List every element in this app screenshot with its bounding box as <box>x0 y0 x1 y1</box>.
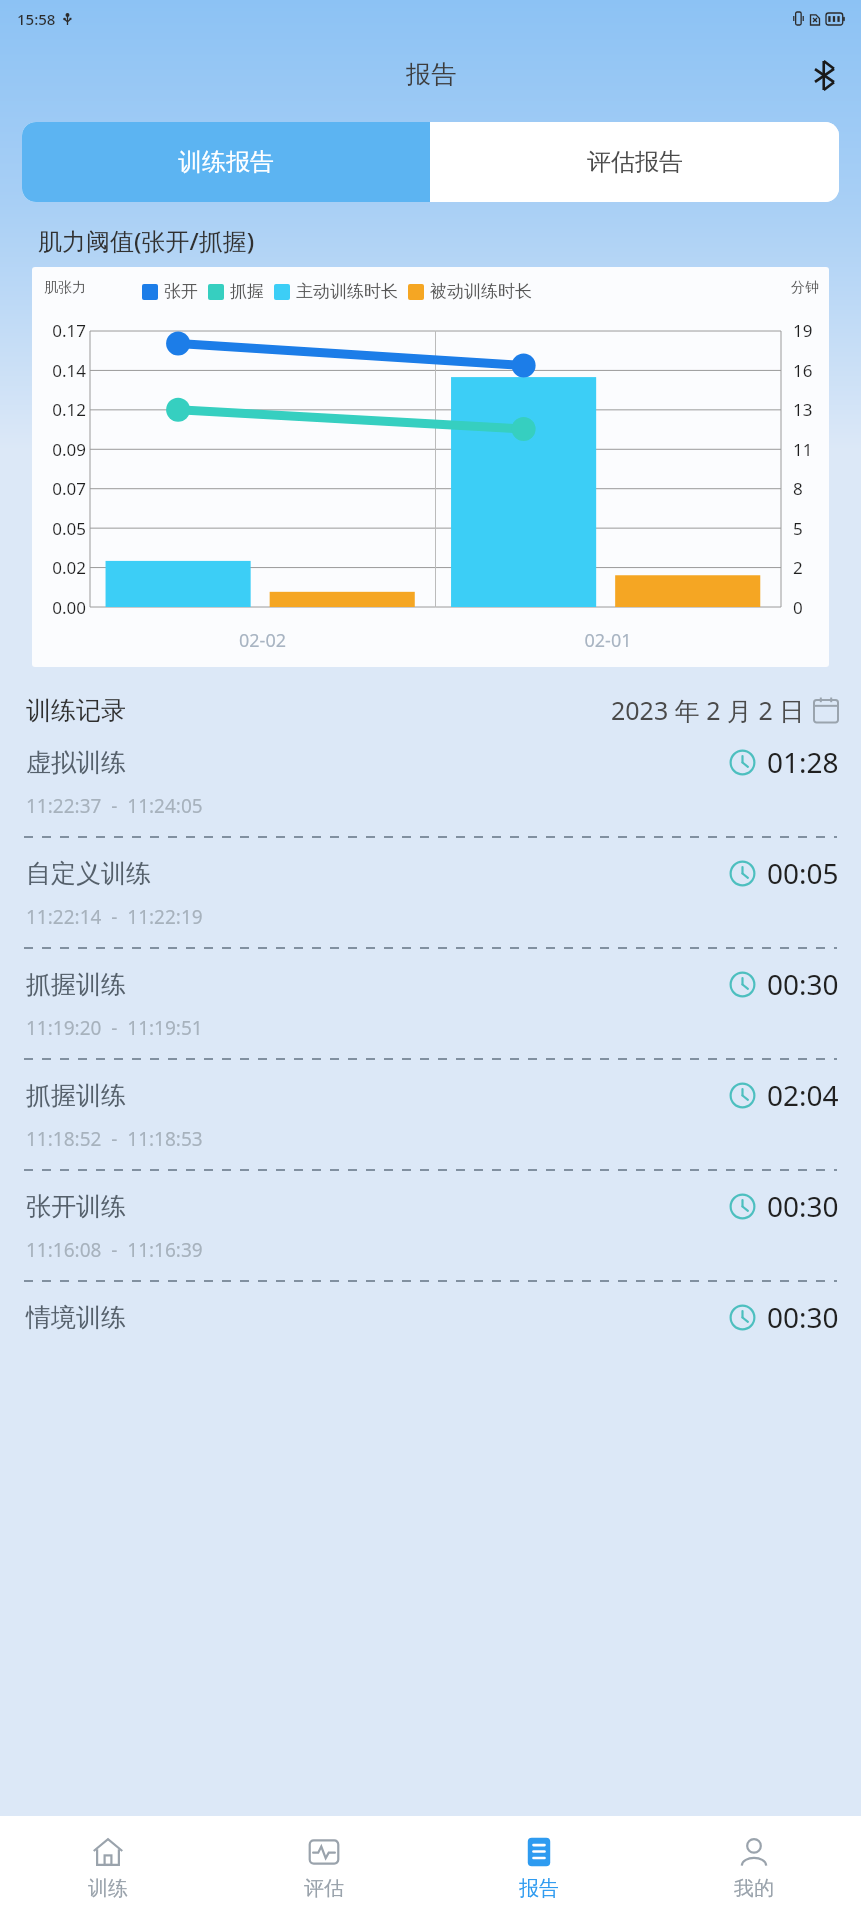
staticText: 0.07 <box>36 477 86 500</box>
staticText: 11:16:08 - 11:16:39 <box>26 1237 203 1263</box>
staticText: 训练报告 <box>178 147 274 177</box>
staticText: 11:22:14 - 11:22:19 <box>26 904 203 930</box>
staticText: 16 <box>793 359 821 382</box>
button[interactable]: 报告 <box>431 1816 646 1920</box>
button[interactable]: 评估报告 <box>430 122 839 202</box>
staticText: 虚拟训练 <box>26 747 126 778</box>
button[interactable]: 训练报告 <box>22 122 430 202</box>
staticText: 0.05 <box>36 517 86 540</box>
staticText: 2 <box>793 556 821 579</box>
staticText: 训练 <box>88 1876 128 1901</box>
button[interactable]: 情境训练 <box>0 1282 861 1356</box>
staticText: 2023 年 2 月 2 日 <box>611 693 805 727</box>
staticText: 0 <box>793 596 821 619</box>
button[interactable]: Bluetooth <box>801 52 847 98</box>
staticText: 0.09 <box>36 438 86 461</box>
staticText: 02:04 <box>767 1076 839 1114</box>
staticText: 15:58 <box>17 9 56 29</box>
staticText: 肌张力 <box>44 279 86 297</box>
staticText: 评估报告 <box>587 147 683 177</box>
staticText: 0.12 <box>36 398 86 421</box>
button[interactable]: 自定义训练 <box>0 838 861 949</box>
button[interactable]: 我的 <box>646 1816 861 1920</box>
staticText: 报告 <box>519 1876 559 1901</box>
staticText: 0.00 <box>36 596 86 619</box>
staticText: 01:28 <box>767 743 839 781</box>
staticText: 抓握 <box>230 281 264 302</box>
button[interactable]: 抓握训练 <box>0 949 861 1060</box>
staticText: 02-02 <box>90 628 435 653</box>
staticText: 11:18:52 - 11:18:53 <box>26 1126 203 1152</box>
staticText: 抓握训练 <box>26 1080 126 1111</box>
staticText: 00:30 <box>767 1298 839 1336</box>
staticText: 肌力阈值(张开/抓握) <box>38 224 255 257</box>
staticText: 分钟 <box>791 279 819 297</box>
staticText: 8 <box>793 477 821 500</box>
staticText: 11:22:37 - 11:24:05 <box>26 793 203 819</box>
staticText: 主动训练时长 <box>296 281 398 302</box>
staticText: 00:30 <box>767 1187 839 1225</box>
staticText: 张开 <box>164 281 198 302</box>
button[interactable]: 评估 <box>216 1816 431 1920</box>
staticText: 0.17 <box>36 319 86 342</box>
button[interactable]: 抓握训练 <box>0 1060 861 1171</box>
staticText: 13 <box>793 398 821 421</box>
staticText: 情境训练 <box>26 1302 126 1333</box>
staticText: 19 <box>793 319 821 342</box>
staticText: 被动训练时长 <box>430 281 532 302</box>
staticText: 0.02 <box>36 556 86 579</box>
button[interactable]: 张开训练 <box>0 1171 861 1282</box>
staticText: 5 <box>793 517 821 540</box>
staticText: 张开训练 <box>26 1191 126 1222</box>
staticText: 报告 <box>406 59 456 90</box>
staticText: 11:19:20 - 11:19:51 <box>26 1015 203 1041</box>
staticText: 自定义训练 <box>26 858 151 889</box>
staticText: 00:30 <box>767 965 839 1003</box>
staticText: 抓握训练 <box>26 969 126 1000</box>
button[interactable]: 虚拟训练 <box>0 727 861 838</box>
staticText: 评估 <box>304 1876 344 1901</box>
staticText: 02-01 <box>435 628 781 653</box>
button[interactable]: 训练 <box>0 1816 216 1920</box>
staticText: 训练记录 <box>26 695 126 726</box>
staticText: 00:05 <box>767 854 839 892</box>
staticText: 0.14 <box>36 359 86 382</box>
staticText: 我的 <box>734 1876 774 1901</box>
staticText: 11 <box>793 438 821 461</box>
button[interactable]: 2023 年 2 月 2 日 <box>611 693 839 727</box>
